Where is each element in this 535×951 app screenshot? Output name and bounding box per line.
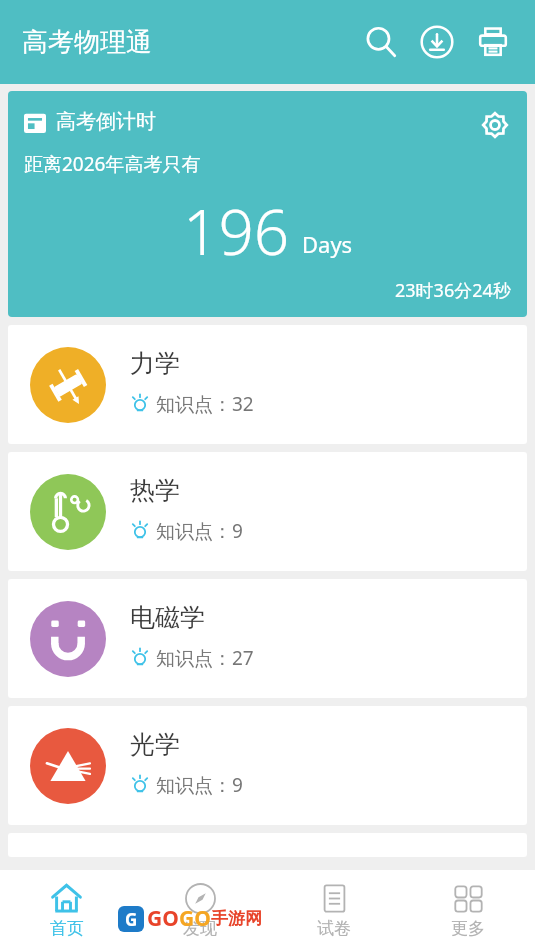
staticText: GO: [147, 904, 179, 933]
button[interactable]: Print: [465, 14, 521, 70]
staticText: 知识点：27: [156, 645, 254, 671]
staticText: 电磁学: [130, 602, 205, 633]
staticText: 知识点：9: [156, 518, 243, 544]
button[interactable]: Search: [353, 14, 409, 70]
button[interactable]: 高考倒计时: [8, 91, 527, 317]
button[interactable]: 热学: [8, 452, 527, 571]
button[interactable]: 发现: [133, 870, 267, 951]
staticText: 距离2026年高考只有: [24, 151, 201, 177]
staticText: 首页: [50, 918, 84, 939]
button[interactable]: 试卷: [267, 870, 401, 951]
button[interactable]: 电磁学: [8, 579, 527, 698]
staticText: 发现: [183, 918, 217, 939]
staticText: 热学: [130, 475, 180, 506]
button[interactable]: 首页: [0, 870, 133, 951]
staticText: 手游网: [211, 908, 262, 929]
staticText: 196: [183, 189, 290, 273]
staticText: G: [125, 908, 138, 931]
button[interactable]: Settings: [473, 103, 517, 147]
staticText: 试卷: [317, 918, 351, 939]
button[interactable]: Download: [409, 14, 465, 70]
staticText: Days: [302, 229, 353, 259]
button[interactable]: 力学: [8, 325, 527, 444]
button[interactable]: 光学: [8, 706, 527, 825]
staticText: GO: [179, 904, 211, 933]
staticText: 知识点：9: [156, 772, 243, 798]
staticText: 高考倒计时: [56, 109, 156, 134]
staticText: 高考物理通: [22, 26, 152, 59]
staticText: 光学: [130, 729, 180, 760]
staticText: 23时36分24秒: [395, 278, 511, 303]
button[interactable]: 更多: [401, 870, 535, 951]
staticText: 更多: [451, 918, 485, 939]
staticText: 知识点：32: [156, 391, 254, 417]
staticText: 力学: [130, 348, 180, 379]
